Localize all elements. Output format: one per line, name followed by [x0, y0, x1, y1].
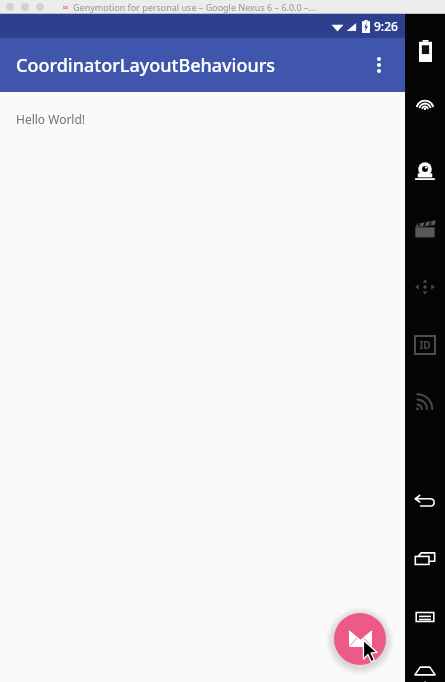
staticText: CoordinatorLayoutBehaviours	[16, 53, 276, 78]
staticText: 9:26	[374, 18, 398, 34]
button[interactable]: Network	[410, 386, 440, 416]
button[interactable]: Home	[410, 660, 440, 682]
button[interactable]: Identifiers	[410, 330, 440, 360]
button[interactable]: Camera	[410, 156, 440, 186]
staticText: Genymotion for personal use – Google Nex…	[73, 1, 316, 13]
button[interactable]: Battery	[410, 36, 440, 66]
button[interactable]: Menu	[410, 602, 440, 632]
staticText: ∞	[62, 3, 69, 12]
staticText: Hello World!	[16, 111, 86, 127]
button[interactable]: Accelerometer	[410, 272, 440, 302]
staticText: ID	[419, 338, 431, 352]
button[interactable]: Back	[410, 486, 440, 516]
button[interactable]: Screen record	[410, 214, 440, 244]
button[interactable]: GPS	[410, 96, 440, 126]
button[interactable]: More options	[361, 47, 397, 83]
button[interactable]: Compose message	[334, 613, 386, 665]
button[interactable]: Rotate	[410, 544, 440, 574]
